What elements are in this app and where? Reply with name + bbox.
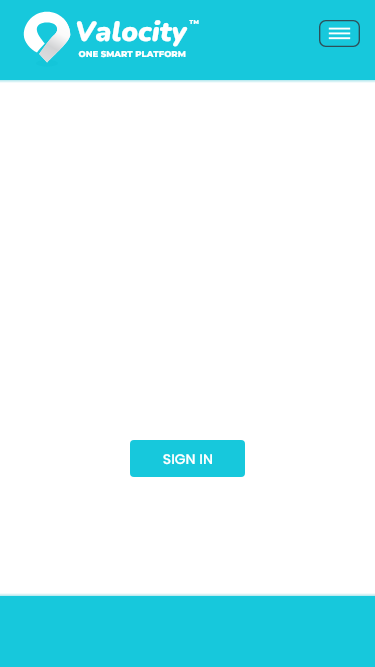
button[interactable] xyxy=(130,440,245,477)
button[interactable]: Menu xyxy=(319,20,360,47)
